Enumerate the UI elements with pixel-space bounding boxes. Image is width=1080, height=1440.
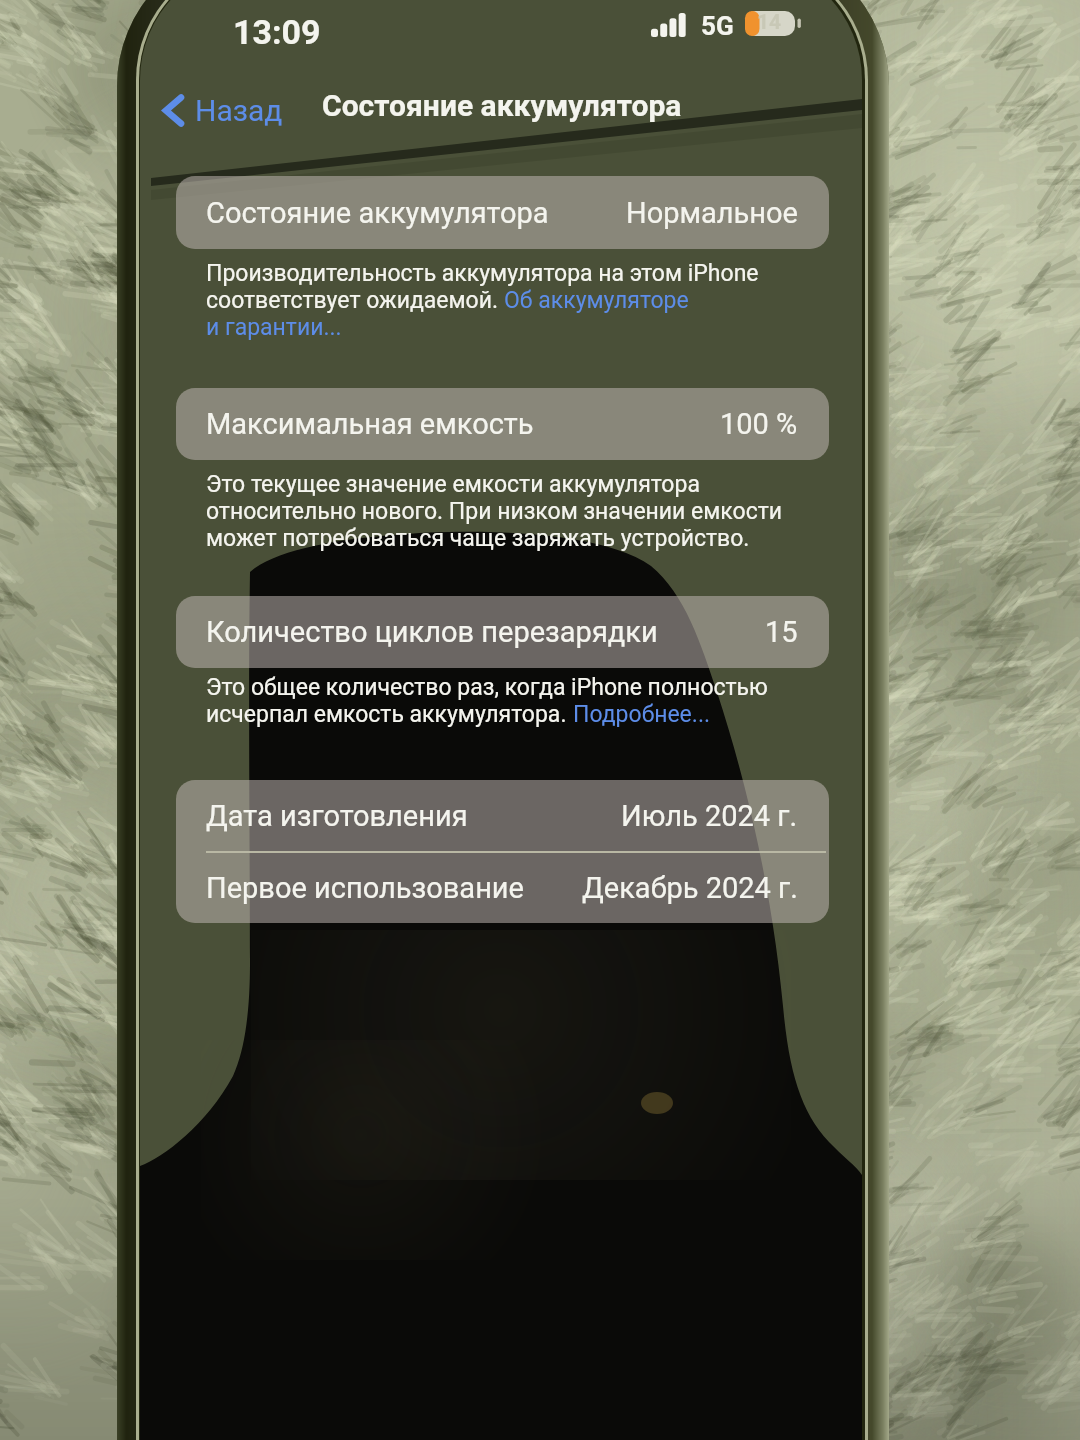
button[interactable]: Состояние аккумулятора — [176, 176, 829, 249]
staticText: Производительность аккумулятора на этом … — [206, 260, 759, 287]
staticText: Назад — [195, 93, 283, 128]
staticText: 100 % — [720, 407, 798, 441]
staticText: 5G — [701, 11, 734, 41]
staticText: соответствует ожидаемой. — [206, 287, 504, 314]
staticText: Это общее количество раз, когда iPhone п… — [206, 674, 768, 701]
staticText: Максимальная емкость — [206, 407, 534, 441]
staticText: Первое использование — [206, 871, 524, 905]
staticText: Нормальное — [626, 196, 798, 230]
button[interactable]: Количество циклов перезарядки — [176, 596, 829, 668]
staticText: и гарантии... — [206, 314, 342, 341]
staticText: Состояние аккумулятора — [206, 196, 549, 230]
staticText: Декабрь 2024 г. — [582, 871, 798, 905]
staticText: Об аккумуляторе — [504, 287, 689, 314]
button[interactable]: Назад — [157, 88, 289, 133]
staticText: относительно нового. При низком значении… — [206, 498, 783, 525]
staticText: Состояние аккумулятора — [322, 88, 682, 123]
staticText: может потребоваться чаще заряжать устрой… — [206, 525, 750, 552]
staticText: Июль 2024 г. — [621, 799, 798, 833]
staticText: 13:09 — [233, 12, 321, 52]
staticText: 14 — [757, 10, 782, 35]
staticText: Количество циклов перезарядки — [206, 615, 658, 649]
staticText: Это текущее значение емкости аккумулятор… — [206, 471, 700, 498]
button[interactable]: Даты — [176, 780, 829, 923]
staticText: 15 — [765, 615, 798, 649]
staticText: Дата изготовления — [206, 799, 468, 833]
staticText: исчерпал емкость аккумулятора. — [206, 701, 573, 728]
staticText: Подробнее... — [573, 701, 711, 728]
button[interactable]: Максимальная емкость — [176, 388, 829, 460]
